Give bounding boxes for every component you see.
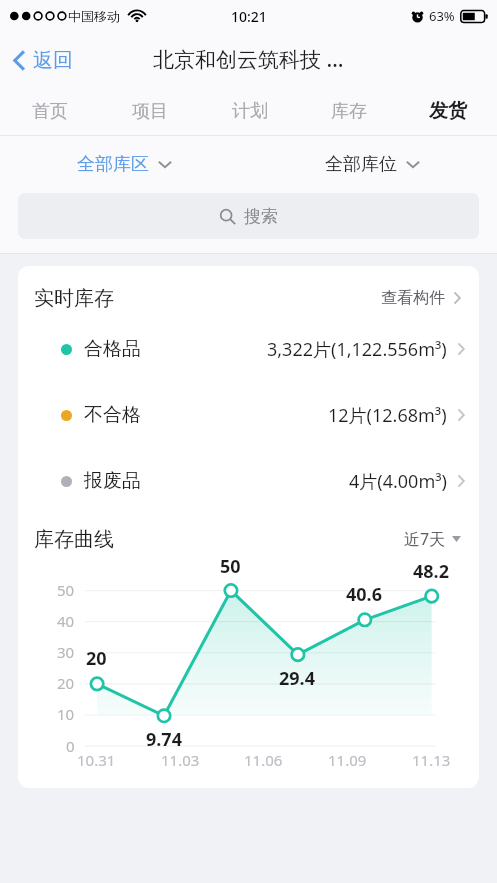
staticText: 项目 [132, 100, 168, 123]
staticText: 中国移动 [68, 8, 120, 24]
staticText: 10 [57, 704, 75, 724]
staticText: 9.74 [146, 727, 182, 752]
staticText: 搜索 [244, 206, 278, 227]
staticText: 合格品 [84, 337, 141, 361]
staticText: 3,322片(1,122.556m³) [267, 337, 447, 362]
staticText: 11.06 [244, 750, 283, 770]
staticText: 北京和创云筑科技 … [153, 45, 344, 74]
staticText: 库存 [331, 100, 367, 123]
button[interactable]: 返回 [0, 37, 85, 83]
button[interactable]: 全部库位 [319, 145, 426, 184]
staticText: 计划 [232, 100, 268, 123]
staticText: 48.2 [413, 559, 449, 584]
staticText: 全部库位 [325, 153, 397, 176]
staticText: 30 [57, 642, 75, 662]
staticText: 63% [429, 7, 455, 25]
staticText: 库存曲线 [34, 527, 114, 552]
staticText: 近7天 [404, 528, 446, 550]
staticText: 报废品 [84, 469, 141, 493]
button[interactable]: 查看构件 [377, 284, 465, 312]
button[interactable]: 项目 [100, 87, 200, 135]
staticText: 不合格 [84, 403, 141, 427]
staticText: 0 [66, 736, 75, 756]
button[interactable]: 近7天 [400, 524, 465, 554]
staticText: 全部库区 [77, 153, 149, 176]
staticText: 首页 [32, 100, 68, 123]
staticText: 发货 [429, 99, 467, 123]
staticText: 4片(4.00m³) [349, 469, 447, 494]
staticText: 10:21 [231, 7, 267, 26]
staticText: 50 [220, 554, 241, 579]
staticText: 11.03 [161, 750, 200, 770]
staticText: 40 [57, 611, 75, 631]
button[interactable]: 首页 [0, 87, 100, 135]
staticText: 20 [86, 646, 107, 671]
button[interactable]: 报废品 [18, 448, 479, 514]
staticText: 实时库存 [34, 286, 114, 311]
button[interactable]: 发货 [398, 87, 497, 135]
staticText: 11.09 [328, 750, 367, 770]
button[interactable]: 不合格 [18, 382, 479, 448]
staticText: 10.31 [77, 750, 116, 770]
staticText: 查看构件 [381, 288, 445, 308]
button[interactable]: 搜索 [18, 193, 479, 239]
staticText: 12片(12.68m³) [328, 403, 447, 428]
staticText: 29.4 [279, 666, 315, 691]
button[interactable]: 合格品 [18, 316, 479, 382]
staticText: 50 [57, 580, 75, 600]
button[interactable]: 库存 [299, 87, 398, 135]
staticText: 11.13 [412, 750, 451, 770]
button[interactable]: 计划 [200, 87, 299, 135]
button[interactable]: 全部库区 [71, 145, 178, 184]
staticText: 40.6 [346, 582, 382, 607]
staticText: 返回 [33, 48, 73, 73]
staticText: 20 [57, 673, 75, 693]
